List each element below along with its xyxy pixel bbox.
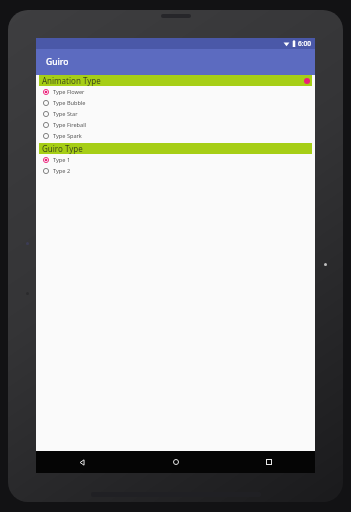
staticText: Type 2 bbox=[53, 167, 71, 175]
staticText: Type Bubble bbox=[53, 99, 86, 107]
staticText: Guiro bbox=[46, 56, 69, 68]
staticText: Animation Type bbox=[42, 75, 101, 86]
button[interactable]: Recent apps bbox=[222, 451, 315, 473]
staticText: Type Fireball bbox=[53, 121, 87, 129]
other: Color indicator bbox=[304, 78, 310, 84]
button[interactable]: Type Star bbox=[36, 108, 315, 119]
button[interactable]: Guiro Type bbox=[39, 143, 312, 154]
staticText: Type Star bbox=[53, 110, 78, 118]
button[interactable]: Type Spark bbox=[36, 130, 315, 141]
button[interactable]: Type Fireball bbox=[36, 119, 315, 130]
staticText: Type Spark bbox=[53, 132, 82, 140]
button[interactable]: Type 2 bbox=[36, 165, 315, 176]
staticText: Guiro Type bbox=[42, 143, 83, 154]
button[interactable]: Home bbox=[129, 451, 222, 473]
button[interactable]: Back bbox=[36, 451, 129, 473]
button[interactable]: Animation Type bbox=[39, 75, 312, 86]
staticText: Type 1 bbox=[53, 156, 71, 164]
staticText: 6:00 bbox=[298, 39, 311, 48]
staticText: Type Flower bbox=[53, 88, 85, 96]
button[interactable]: Type 1 bbox=[36, 154, 315, 165]
button[interactable]: Type Flower bbox=[36, 86, 315, 97]
button[interactable]: Type Bubble bbox=[36, 97, 315, 108]
